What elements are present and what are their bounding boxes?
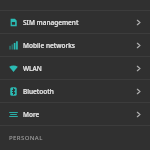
- button[interactable]: Mobile networks: [0, 34, 150, 56]
- button[interactable]: More: [0, 103, 150, 125]
- staticText: Bluetooth: [23, 87, 54, 96]
- other: Open WLAN: [135, 65, 142, 72]
- staticText: SIM management: [23, 18, 79, 27]
- button[interactable]: Bluetooth: [0, 80, 150, 102]
- staticText: More: [23, 110, 40, 119]
- button[interactable]: SIM management: [0, 11, 150, 33]
- other: Open Bluetooth: [135, 88, 142, 95]
- button[interactable]: WLAN: [0, 57, 150, 79]
- staticText: PERSONAL: [9, 134, 43, 142]
- other: Open SIM management: [135, 19, 142, 26]
- staticText: Mobile networks: [23, 41, 75, 50]
- other: Open Mobile networks: [135, 42, 142, 49]
- other: Open More: [135, 111, 142, 118]
- staticText: WLAN: [23, 64, 42, 73]
